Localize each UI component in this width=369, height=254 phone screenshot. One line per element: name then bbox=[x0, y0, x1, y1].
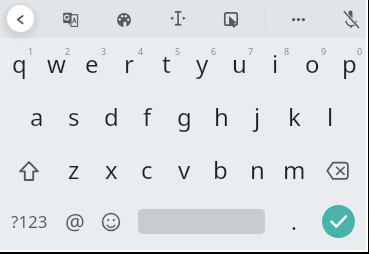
button[interactable] bbox=[238, 91, 275, 144]
staticText: o bbox=[305, 47, 320, 80]
button[interactable]: Backspace bbox=[311, 144, 366, 197]
button[interactable] bbox=[92, 91, 129, 144]
button[interactable] bbox=[165, 144, 202, 197]
staticText: q bbox=[12, 47, 27, 80]
staticText: n bbox=[250, 153, 265, 186]
button[interactable]: Back bbox=[7, 5, 34, 32]
staticText: f bbox=[143, 100, 152, 133]
staticText: ?123 bbox=[11, 210, 48, 233]
staticText: 9 bbox=[321, 45, 327, 57]
button[interactable] bbox=[238, 144, 275, 197]
staticText: i bbox=[272, 47, 279, 80]
button[interactable]: Translate bbox=[55, 4, 85, 34]
button[interactable]: Enter bbox=[322, 205, 355, 238]
button[interactable] bbox=[128, 144, 165, 197]
staticText: c bbox=[141, 153, 153, 186]
button[interactable] bbox=[55, 144, 92, 197]
button[interactable] bbox=[275, 144, 312, 197]
staticText: . bbox=[291, 206, 297, 236]
button[interactable] bbox=[293, 38, 330, 91]
button[interactable]: Resize keyboard bbox=[216, 4, 246, 34]
staticText: j bbox=[254, 100, 261, 133]
button[interactable] bbox=[256, 38, 293, 91]
button[interactable]: Keyboard theme bbox=[109, 5, 139, 35]
staticText: 1 bbox=[28, 45, 34, 57]
staticText: l bbox=[327, 100, 334, 133]
button[interactable]: Shift bbox=[0, 144, 55, 197]
staticText: @ bbox=[65, 206, 85, 236]
staticText: a bbox=[30, 100, 44, 133]
staticText: h bbox=[214, 100, 229, 133]
button[interactable] bbox=[329, 38, 366, 91]
button[interactable]: Emoji bbox=[92, 196, 129, 249]
button[interactable] bbox=[0, 38, 37, 91]
staticText: r bbox=[124, 47, 134, 80]
staticText: t bbox=[162, 47, 171, 80]
staticText: m bbox=[283, 153, 306, 186]
staticText: 8 bbox=[284, 45, 290, 57]
staticText: 0 bbox=[357, 45, 363, 57]
button[interactable] bbox=[128, 91, 165, 144]
button[interactable] bbox=[73, 38, 110, 91]
button[interactable] bbox=[275, 196, 312, 249]
staticText: s bbox=[68, 100, 80, 133]
button[interactable]: Text editing bbox=[163, 4, 193, 34]
button[interactable] bbox=[183, 38, 220, 91]
staticText: 4 bbox=[138, 45, 144, 57]
staticText: k bbox=[288, 100, 301, 133]
button[interactable] bbox=[0, 196, 55, 249]
staticText: b bbox=[213, 153, 228, 186]
staticText: 6 bbox=[211, 45, 217, 57]
staticText: p bbox=[342, 47, 357, 80]
button[interactable] bbox=[274, 91, 311, 144]
button[interactable]: Space bbox=[128, 196, 274, 249]
button[interactable] bbox=[110, 38, 147, 91]
staticText: g bbox=[177, 100, 192, 133]
button[interactable] bbox=[201, 91, 238, 144]
staticText: e bbox=[85, 47, 99, 80]
button[interactable] bbox=[92, 144, 129, 197]
staticText: d bbox=[104, 100, 119, 133]
staticText: x bbox=[105, 153, 118, 186]
button[interactable] bbox=[55, 196, 92, 249]
button[interactable] bbox=[220, 38, 257, 91]
staticText: 7 bbox=[248, 45, 254, 57]
staticText: 3 bbox=[101, 45, 107, 57]
button[interactable] bbox=[201, 144, 238, 197]
button[interactable] bbox=[165, 91, 202, 144]
button[interactable] bbox=[146, 38, 183, 91]
button[interactable] bbox=[37, 38, 74, 91]
staticText: 5 bbox=[175, 45, 181, 57]
button[interactable] bbox=[55, 91, 92, 144]
staticText: w bbox=[47, 47, 66, 80]
staticText: 2 bbox=[65, 45, 71, 57]
button[interactable] bbox=[311, 91, 348, 144]
staticText: y bbox=[196, 47, 209, 80]
staticText: z bbox=[68, 153, 80, 186]
staticText: v bbox=[178, 153, 191, 186]
button[interactable]: Voice input off bbox=[335, 3, 365, 33]
button[interactable] bbox=[18, 91, 55, 144]
staticText: u bbox=[232, 47, 247, 80]
button[interactable]: More options bbox=[283, 4, 313, 34]
